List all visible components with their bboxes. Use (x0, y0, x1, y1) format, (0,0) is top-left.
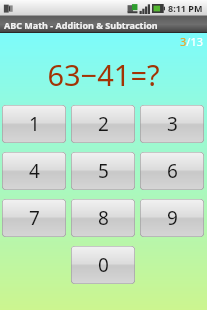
staticText: 2 (98, 111, 109, 137)
staticText: 6 (167, 158, 178, 184)
button[interactable]: 9 (140, 199, 204, 237)
staticText: 3 (167, 111, 178, 137)
button[interactable]: 3 (140, 105, 204, 143)
staticText: 1 (29, 111, 40, 137)
button[interactable]: 2 (71, 105, 135, 143)
staticText: 3/13 (180, 34, 203, 49)
button[interactable]: 4 (2, 152, 66, 190)
button[interactable]: 7 (2, 199, 66, 237)
button[interactable]: 6 (140, 152, 204, 190)
staticText: 7 (29, 205, 40, 231)
button[interactable]: 0 (71, 246, 135, 284)
staticText: 9 (167, 205, 178, 231)
button[interactable]: 8 (71, 199, 135, 237)
staticText: 5 (98, 158, 109, 184)
button[interactable]: 5 (71, 152, 135, 190)
staticText: 63−41=? (47, 55, 160, 94)
staticText: ABC Math - Addition & Subtraction (4, 19, 158, 31)
staticText: 8 (98, 205, 109, 231)
staticText: 8:11 PM (168, 2, 203, 14)
button[interactable]: 1 (2, 105, 66, 143)
staticText: 4 (29, 158, 40, 184)
staticText: 0 (98, 252, 109, 278)
